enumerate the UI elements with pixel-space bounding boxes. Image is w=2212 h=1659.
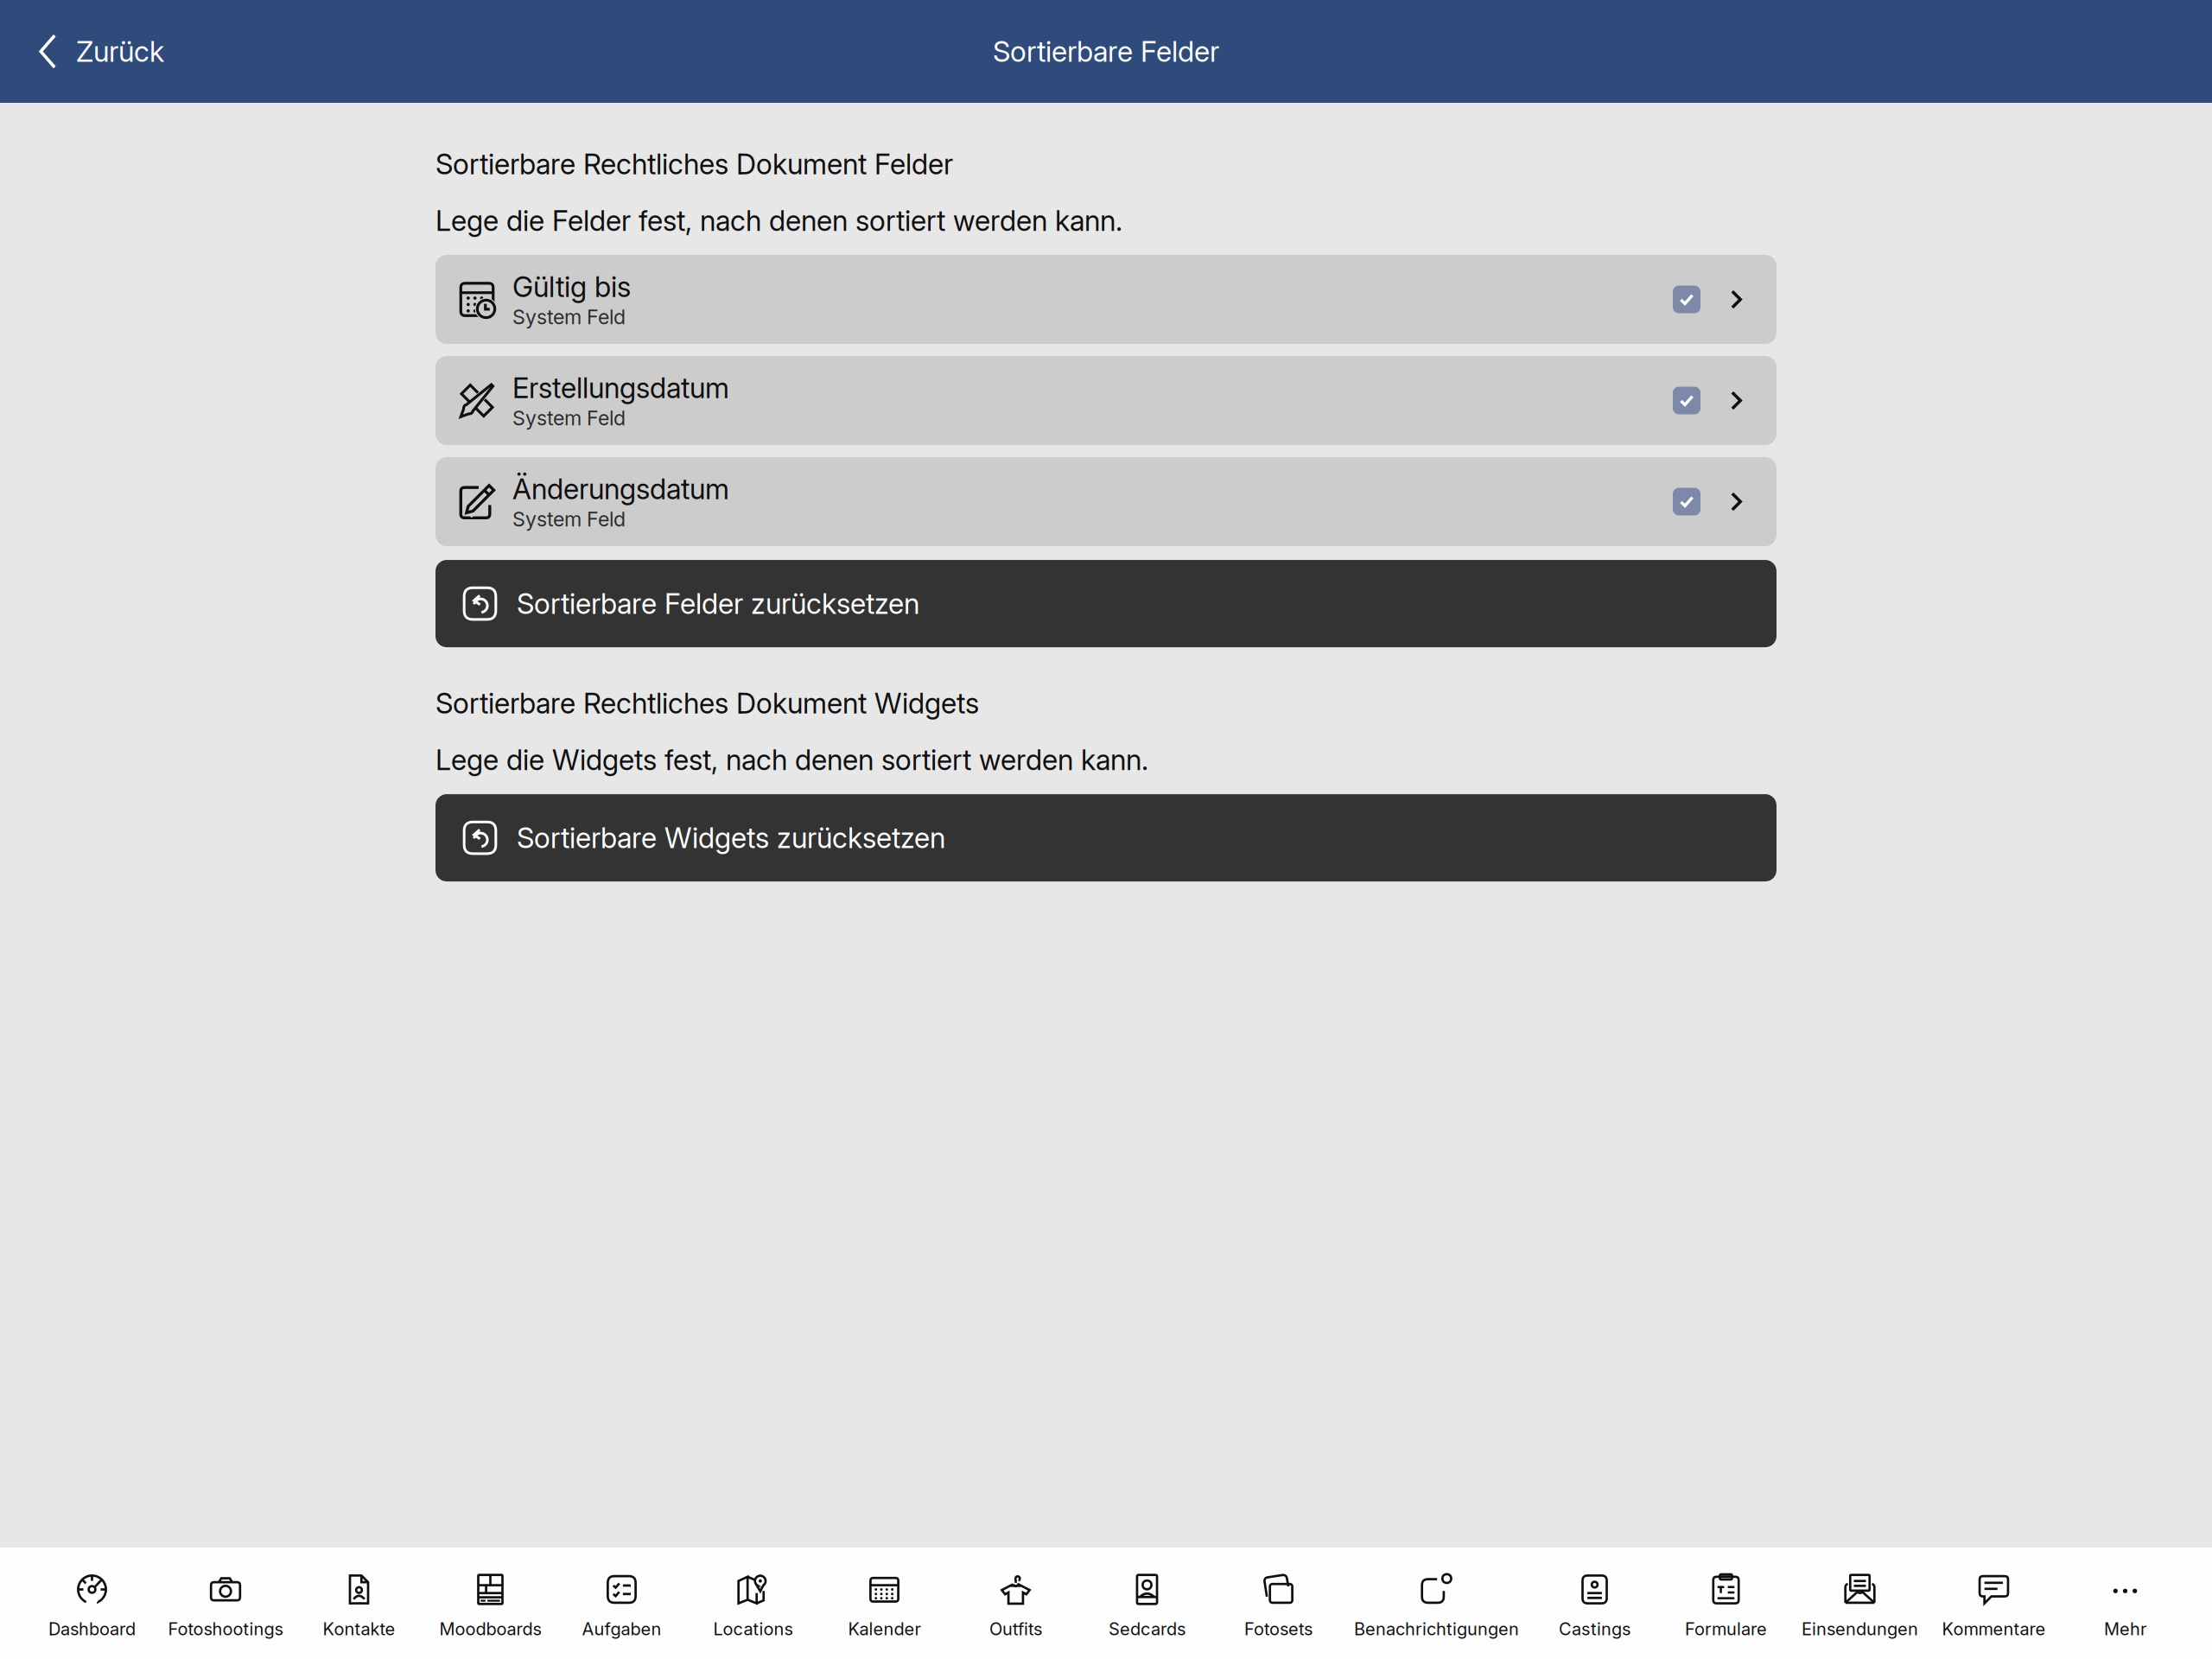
staticText: Sortierbare Felder zurücksetzen [517, 587, 919, 621]
button[interactable]: Mehr [2059, 1548, 2191, 1659]
staticText: Sortierbare Widgets zurücksetzen [517, 821, 945, 855]
button[interactable]: Castings [1529, 1548, 1660, 1659]
staticText: Sortierbare Rechtliches Dokument Widgets [435, 686, 979, 720]
staticText: Sedcards [1109, 1618, 1185, 1639]
button[interactable]: Formulare [1660, 1548, 1792, 1659]
button[interactable]: Sedcards [1081, 1548, 1213, 1659]
staticText: Moodboards [439, 1618, 541, 1639]
staticText: Kalender [848, 1618, 921, 1639]
staticText: Fotoshootings [168, 1618, 283, 1639]
button[interactable]: Benachrichtigungen [1344, 1548, 1529, 1659]
staticText: Lege die Felder fest, nach denen sortier… [435, 203, 1122, 238]
staticText: System Feld [512, 406, 626, 430]
button[interactable]: Zurück [0, 0, 185, 103]
staticText: System Feld [512, 305, 626, 329]
staticText: Dashboard [48, 1618, 136, 1639]
staticText: Änderungsdatum [512, 472, 729, 506]
staticText: Lege die Widgets fest, nach denen sortie… [435, 743, 1148, 777]
staticText: Formulare [1685, 1618, 1767, 1639]
button[interactable]: Dashboard [26, 1548, 158, 1659]
staticText: Erstellungsdatum [512, 371, 729, 405]
staticText: Sortierbare Felder [993, 34, 1219, 68]
button[interactable]: Fotoshootings [158, 1548, 293, 1659]
button[interactable]: Kalender [819, 1548, 950, 1659]
button[interactable]: Kommentare [1928, 1548, 2059, 1659]
button[interactable]: Locations [687, 1548, 819, 1659]
button[interactable]: Outfits [950, 1548, 1081, 1659]
button[interactable]: Gültig bis [435, 255, 1777, 344]
staticText: Fotosets [1244, 1618, 1313, 1639]
staticText: Outfits [989, 1618, 1042, 1639]
button[interactable]: Erstellungsdatum [435, 356, 1777, 445]
button[interactable]: Aufgaben [556, 1548, 687, 1659]
staticText: Aufgaben [582, 1618, 661, 1639]
button[interactable]: Fotosets [1213, 1548, 1344, 1659]
button[interactable]: Sortierbare Felder zurücksetzen [435, 560, 1777, 647]
staticText: Einsendungen [1802, 1618, 1918, 1639]
staticText: Zurück [76, 34, 164, 68]
staticText: Kommentare [1942, 1618, 2046, 1639]
button[interactable]: Moodboards [425, 1548, 556, 1659]
staticText: Sortierbare Rechtliches Dokument Felder [435, 147, 953, 181]
staticText: Kontakte [323, 1618, 395, 1639]
staticText: Castings [1559, 1618, 1630, 1639]
staticText: System Feld [512, 507, 626, 531]
staticText: Locations [713, 1618, 793, 1639]
button[interactable]: Sortierbare Widgets zurücksetzen [435, 794, 1777, 881]
staticText: Benachrichtigungen [1354, 1618, 1519, 1639]
staticText: Gültig bis [512, 270, 631, 304]
button[interactable]: Kontakte [293, 1548, 425, 1659]
button[interactable]: Änderungsdatum [435, 457, 1777, 546]
button[interactable]: Einsendungen [1792, 1548, 1928, 1659]
staticText: Mehr [2104, 1618, 2146, 1639]
